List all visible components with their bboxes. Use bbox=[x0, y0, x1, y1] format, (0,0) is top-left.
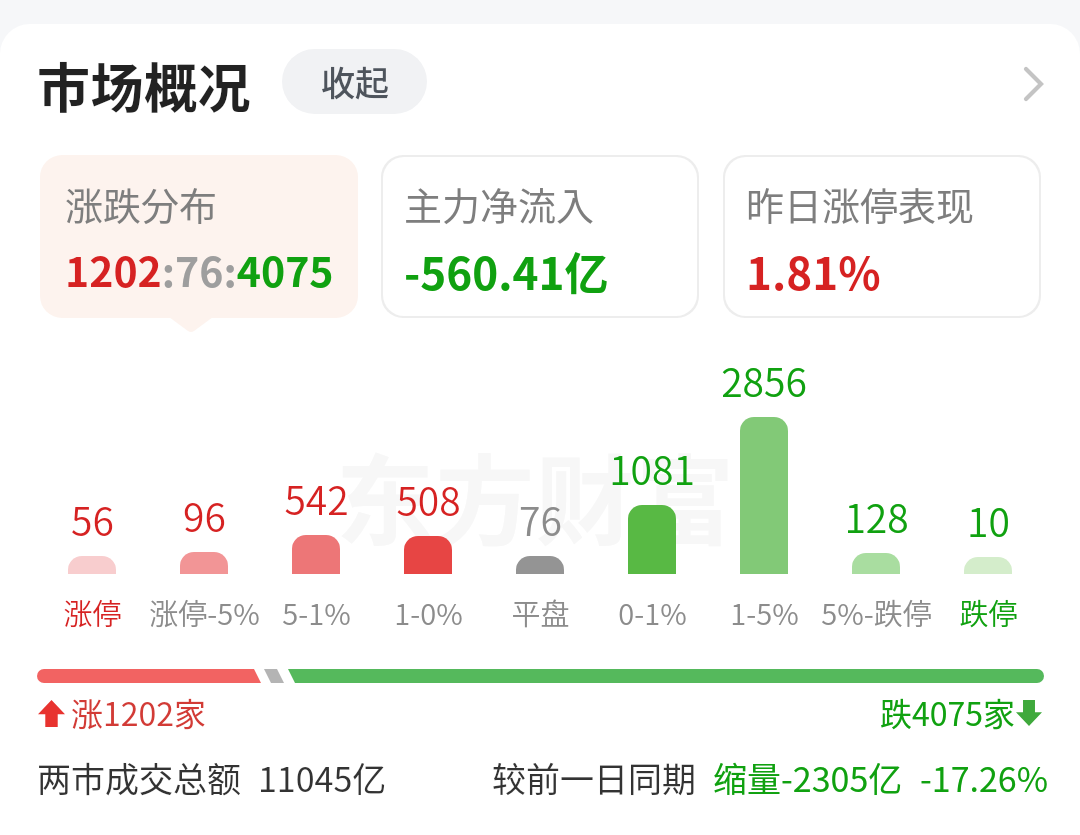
staticText: -560.41亿 bbox=[404, 239, 609, 303]
staticText: 市场概况 bbox=[37, 47, 251, 124]
staticText: 两市成交总额 bbox=[37, 753, 241, 802]
button[interactable]: 收起 bbox=[282, 49, 427, 114]
staticText: 东方财富 bbox=[336, 423, 737, 565]
staticText: 平盘 bbox=[511, 591, 570, 633]
staticText: 5%-跌停 bbox=[821, 591, 932, 633]
staticText: 10 bbox=[967, 492, 1010, 548]
staticText: 涨跌分布 bbox=[65, 176, 218, 231]
staticText: 76 bbox=[519, 491, 562, 547]
staticText: 跌停 bbox=[959, 591, 1018, 633]
staticText: 1081 bbox=[609, 440, 695, 496]
staticText: 11045亿 bbox=[258, 753, 387, 802]
staticText: 0-1% bbox=[618, 591, 687, 633]
button[interactable]: 涨跌分布 bbox=[40, 155, 358, 318]
staticText: 涨停 bbox=[63, 591, 122, 633]
button[interactable]: 昨日涨停表现 bbox=[725, 157, 1039, 316]
staticText: 2856 bbox=[721, 352, 807, 408]
staticText: 缩量-2305亿 bbox=[713, 753, 903, 802]
staticText: 主力净流入 bbox=[404, 176, 595, 231]
staticText: 涨停-5% bbox=[149, 591, 260, 633]
staticText: 昨日涨停表现 bbox=[746, 176, 975, 231]
staticText: 1202:76:4075 bbox=[65, 239, 334, 298]
staticText: 跌4075家 bbox=[880, 689, 1016, 735]
staticText: 542 bbox=[284, 470, 349, 526]
staticText: 收起 bbox=[321, 57, 389, 106]
staticText: 1.81% bbox=[746, 239, 881, 303]
staticText: -17.26% bbox=[920, 753, 1049, 802]
staticText: 1-5% bbox=[730, 591, 799, 633]
button[interactable]: 展开更多 bbox=[1006, 56, 1062, 112]
staticText: 128 bbox=[844, 488, 909, 544]
button[interactable]: 市场概况 bbox=[30, 40, 260, 122]
staticText: 较前一日同期 bbox=[492, 753, 696, 802]
staticText: 56 bbox=[71, 491, 114, 547]
staticText: 96 bbox=[183, 487, 226, 543]
staticText: 5-1% bbox=[282, 591, 351, 633]
button[interactable]: 主力净流入 bbox=[383, 157, 697, 316]
staticText: 508 bbox=[396, 471, 461, 527]
staticText: 涨1202家 bbox=[71, 689, 207, 735]
staticText: 1-0% bbox=[394, 591, 463, 633]
